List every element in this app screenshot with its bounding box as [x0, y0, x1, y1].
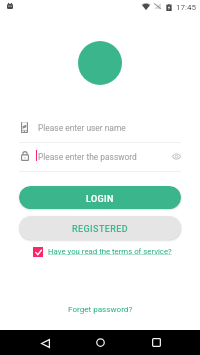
- button[interactable]: Avatar: [78, 41, 122, 85]
- button[interactable]: Home: [85, 330, 115, 355]
- staticText: Have you read the terms of service?: [48, 247, 172, 256]
- staticText: 17:45: [176, 3, 196, 12]
- button[interactable]: LOGIN: [19, 186, 181, 209]
- button[interactable]: Show password: [168, 148, 184, 164]
- button[interactable]: Recents: [141, 330, 171, 355]
- staticText: LOGIN: [86, 194, 114, 205]
- staticText: Please enter the password: [38, 152, 137, 162]
- staticText: Please enter user name: [38, 123, 126, 133]
- button[interactable]: Back: [30, 330, 60, 355]
- button[interactable]: Forget password?: [68, 304, 133, 313]
- button[interactable]: Have you read the terms of service?: [33, 246, 172, 256]
- staticText: REGISTERED: [72, 224, 129, 235]
- button[interactable]: REGISTERED: [19, 216, 181, 240]
